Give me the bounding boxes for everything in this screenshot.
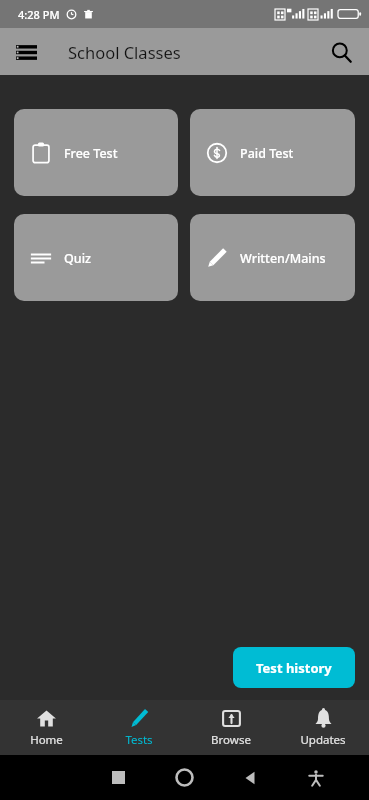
- staticText: 4:28 PM: [18, 7, 60, 22]
- button[interactable]: Paid Test: [190, 109, 355, 196]
- staticText: Home: [30, 732, 63, 748]
- staticText: School Classes: [68, 41, 181, 63]
- button[interactable]: Accessibility: [283, 770, 349, 786]
- button[interactable]: Tests: [93, 700, 185, 755]
- staticText: Browse: [211, 732, 251, 748]
- staticText: Written/Mains: [240, 250, 326, 267]
- button[interactable]: Home: [0, 700, 93, 755]
- button[interactable]: Back: [217, 771, 283, 785]
- button[interactable]: Menu: [6, 32, 46, 72]
- staticText: Free Test: [64, 145, 118, 162]
- staticText: Paid Test: [240, 145, 294, 162]
- button[interactable]: Free Test: [14, 109, 178, 196]
- button[interactable]: Search: [321, 32, 361, 72]
- button[interactable]: Recents: [85, 771, 151, 784]
- button[interactable]: Test history: [233, 647, 355, 688]
- button[interactable]: Updates: [277, 700, 369, 755]
- staticText: Test history: [256, 659, 332, 677]
- staticText: Tests: [125, 732, 153, 748]
- button[interactable]: Written/Mains: [190, 214, 355, 301]
- staticText: Updates: [300, 732, 346, 748]
- button[interactable]: Browse: [185, 700, 277, 755]
- button[interactable]: Quiz: [14, 214, 178, 301]
- button[interactable]: Home: [151, 768, 217, 787]
- staticText: Quiz: [64, 250, 91, 267]
